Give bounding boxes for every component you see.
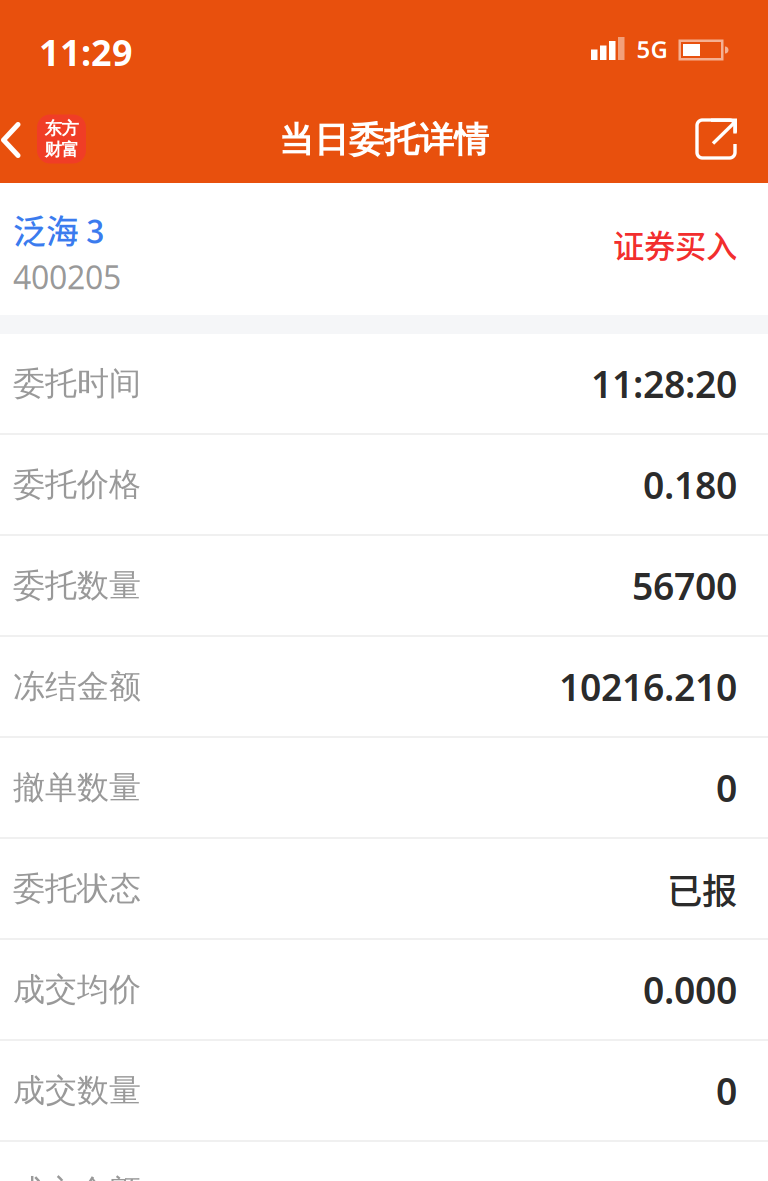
staticText: 委托时间 <box>13 364 141 403</box>
staticText: 56700 <box>632 561 737 610</box>
staticText: 0.180 <box>643 460 737 509</box>
staticText: 委托数量 <box>13 566 141 605</box>
button[interactable]: 东方财富 <box>37 114 86 163</box>
staticText: 5G <box>636 33 667 65</box>
staticText: 0 <box>716 1066 737 1115</box>
staticText: 撤单数量 <box>13 768 141 807</box>
button[interactable]: Share <box>695 118 737 160</box>
staticText: 0.000 <box>643 965 737 1014</box>
staticText: 成交均价 <box>13 970 141 1009</box>
staticText: 证券买入 <box>613 224 737 265</box>
staticText: 委托状态 <box>13 869 141 908</box>
staticText: 400205 <box>13 256 121 298</box>
staticText: 当日委托详情 <box>279 119 489 161</box>
button[interactable]: Back <box>1 122 21 158</box>
staticText: 已报 <box>667 865 737 911</box>
staticText: 泛海 3 <box>13 208 105 251</box>
staticText: 0 <box>716 763 737 812</box>
staticText: 成交数量 <box>13 1071 141 1110</box>
staticText: 11:29 <box>39 28 133 76</box>
staticText: 财富 <box>44 139 78 160</box>
staticText: 冻结金额 <box>13 667 141 706</box>
staticText: 委托价格 <box>13 465 141 504</box>
staticText: 成交金额 <box>13 1172 141 1181</box>
staticText: 11:28:20 <box>591 359 737 408</box>
staticText: 东方 <box>44 118 78 139</box>
staticText: 10216.210 <box>559 662 737 711</box>
